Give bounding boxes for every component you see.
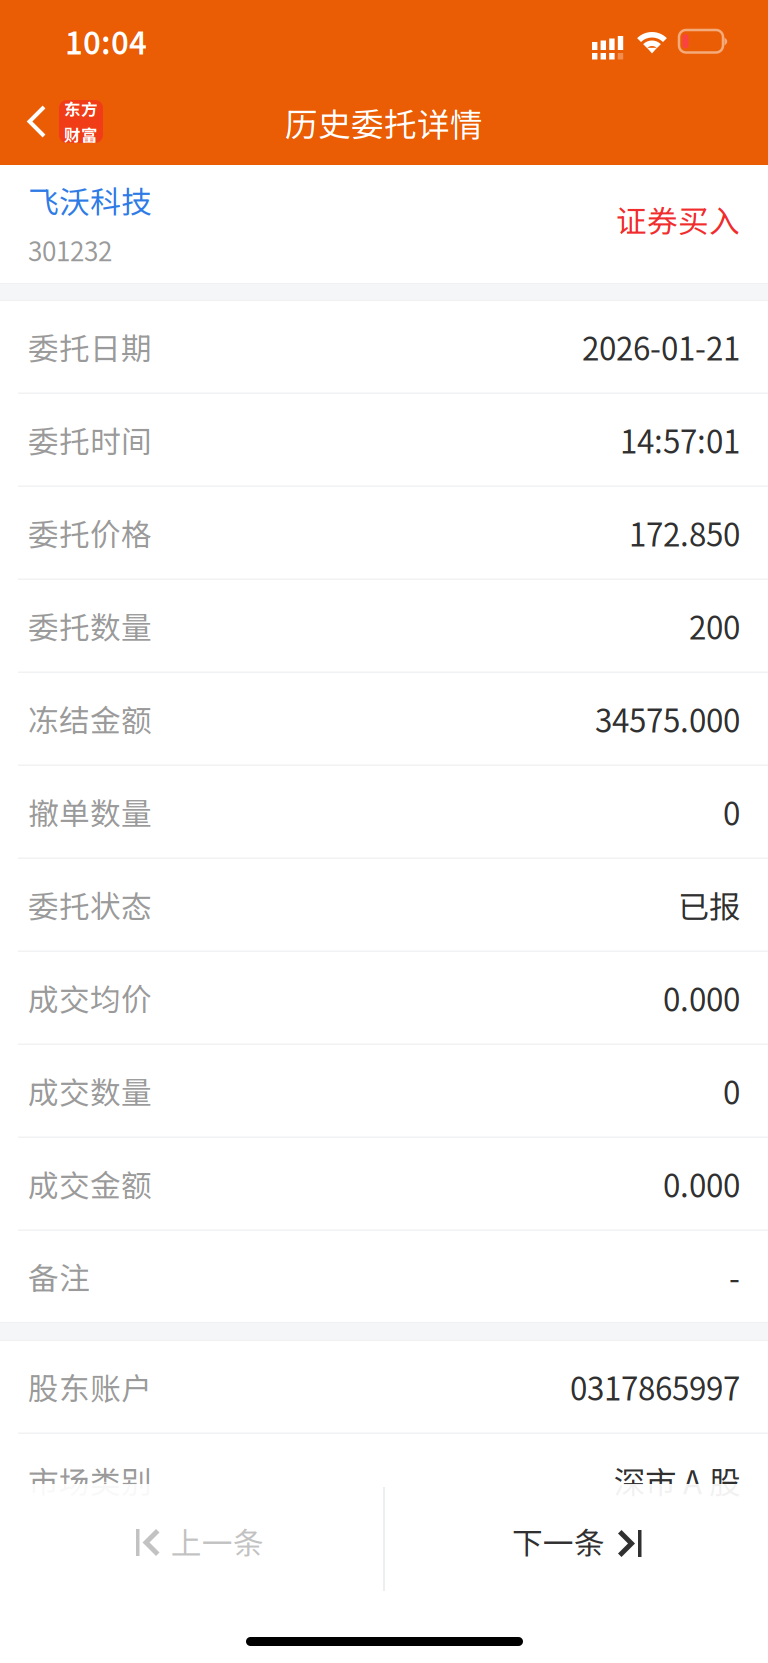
staticText: 301232 [28,231,112,269]
staticText: 股东账户 [28,1364,152,1409]
button[interactable]: 上一条 [0,1484,384,1591]
staticText: 备注 [28,1254,90,1299]
staticText: 34575.000 [595,696,740,741]
staticText: 委托时间 [28,417,152,462]
staticText: 东方 [64,96,98,120]
staticText: 深市 A 股 [614,1458,740,1503]
button[interactable]: 下一条 [384,1484,768,1591]
staticText: 历史委托详情 [285,99,483,146]
staticText: 2026-01-21 [582,324,740,369]
button[interactable]: 返回 [0,84,118,165]
staticText: 0 [723,1068,740,1113]
staticText: 冻结金额 [28,696,152,741]
staticText: 下一条 [512,1519,605,1563]
staticText: 14:57:01 [620,417,740,462]
staticText: 0.000 [663,1161,740,1206]
staticText: 成交金额 [28,1161,152,1206]
staticText: 市场类别 [28,1458,152,1503]
staticText: 财富 [64,122,98,147]
staticText: 0317865997 [570,1364,740,1409]
staticText: 成交数量 [28,1068,152,1113]
staticText: 已报 [678,882,740,927]
staticText: 委托数量 [28,603,152,648]
staticText: 证券买入 [616,197,740,241]
staticText: - [729,1254,740,1299]
staticText: 成交均价 [28,975,152,1020]
staticText: 飞沃科技 [28,178,152,222]
staticText: 委托日期 [28,324,152,369]
staticText: 172.850 [629,510,740,555]
staticText: 委托价格 [28,510,152,555]
staticText: 撤单数量 [28,789,152,834]
staticText: 200 [689,603,740,648]
staticText: 10:04 [65,19,147,63]
staticText: 0 [723,789,740,834]
staticText: 上一条 [171,1519,264,1563]
staticText: 委托状态 [28,882,152,927]
staticText: 0.000 [663,975,740,1020]
